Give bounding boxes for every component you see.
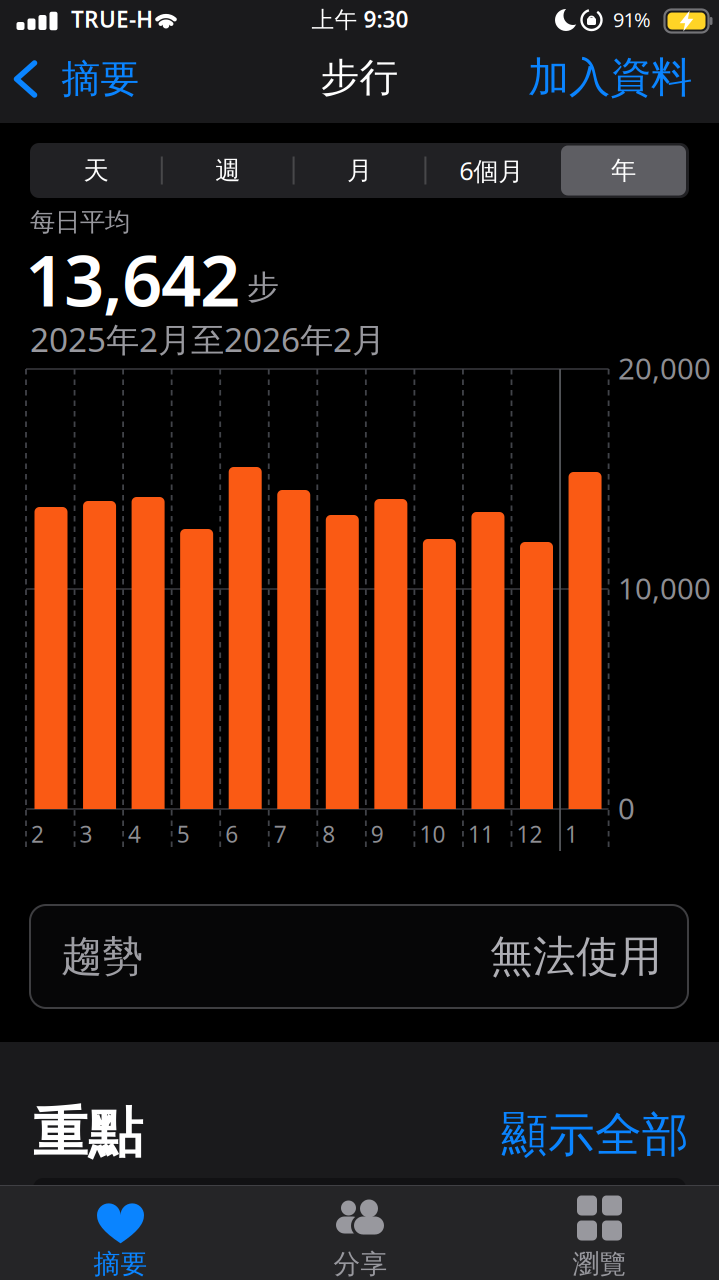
button[interactable]: 月 (294, 143, 425, 198)
staticText: 7 (274, 819, 287, 849)
staticText: 分享 (333, 1248, 387, 1280)
staticText: 12 (516, 819, 542, 849)
button[interactable]: 瀏覽 (509, 1185, 689, 1280)
staticText: 5 (177, 819, 190, 849)
staticText: 步 (247, 267, 279, 307)
button[interactable]: 摘要 (14, 55, 139, 103)
staticText: TRUE-H (71, 4, 153, 34)
staticText: 6 (225, 819, 238, 849)
staticText: 顯示全部 (501, 1106, 689, 1164)
staticText: 0 (618, 788, 635, 827)
staticText: 每日平均 (30, 206, 130, 237)
button[interactable]: 摘要 (30, 1185, 210, 1280)
staticText: 月 (347, 155, 372, 186)
staticText: 無法使用 (490, 930, 662, 983)
staticText: 2 (31, 819, 44, 849)
staticText: 3 (80, 819, 93, 849)
button[interactable]: 加入資料 (528, 52, 692, 103)
button[interactable]: 顯示全部 (501, 1106, 689, 1164)
button[interactable]: 分享 (270, 1185, 450, 1280)
staticText: 摘要 (93, 1248, 147, 1280)
staticText: 6個月 (459, 154, 523, 187)
staticText: 11 (468, 819, 494, 849)
staticText: 9 (371, 819, 384, 849)
button[interactable]: 趨勢 (30, 905, 688, 1008)
staticText: 13,642 (25, 232, 240, 326)
button[interactable]: 週 (162, 143, 293, 198)
staticText: 年 (611, 155, 636, 186)
button[interactable]: 天 (30, 143, 161, 198)
staticText: 加入資料 (528, 52, 692, 103)
staticText: 1 (565, 819, 578, 849)
staticText: 8 (322, 819, 335, 849)
staticText: 摘要 (61, 55, 139, 103)
staticText: 步行 (320, 54, 398, 101)
staticText: 天 (83, 155, 108, 186)
staticText: 4 (128, 819, 141, 849)
button[interactable]: 年 (561, 145, 686, 195)
staticText: 週 (215, 155, 240, 186)
staticText: 重點 (33, 1099, 143, 1166)
staticText: 2025年2月至2026年2月 (30, 317, 385, 361)
staticText: 91% (613, 6, 651, 33)
staticText: 10 (419, 819, 445, 849)
staticText: 上午 9:30 (311, 4, 408, 34)
staticText: 20,000 (618, 348, 711, 387)
staticText: 趨勢 (61, 931, 143, 982)
staticText: 瀏覽 (572, 1248, 626, 1280)
button[interactable]: 6個月 (426, 143, 557, 198)
staticText: 10,000 (618, 568, 711, 607)
